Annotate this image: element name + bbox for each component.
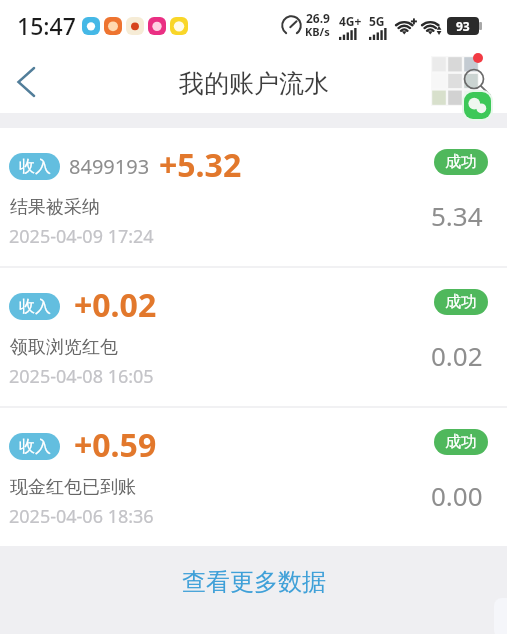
staticText: 2025-04-06 18:36 — [9, 504, 154, 529]
button[interactable]: Back — [2, 58, 50, 106]
staticText: +0.59 — [74, 423, 157, 467]
staticText: 成功 — [445, 292, 477, 312]
staticText: 查看更多数据 — [182, 567, 326, 597]
staticText: 现金红包已到账 — [10, 476, 136, 499]
staticText: 成功 — [445, 152, 477, 172]
staticText: 4G+ — [339, 13, 362, 29]
staticText: 15:47 — [17, 10, 76, 41]
staticText: 收入 — [19, 437, 51, 457]
button[interactable]: 收入 — [0, 268, 507, 406]
staticText: 93 — [456, 18, 470, 34]
staticText: 8499193 — [69, 153, 150, 180]
staticText: 收入 — [19, 297, 51, 317]
button[interactable]: 收入 — [0, 408, 507, 546]
staticText: 收入 — [19, 157, 51, 177]
staticText: 26.9 — [306, 10, 330, 26]
staticText: 领取浏览红包 — [10, 336, 118, 359]
staticText: 我的账户流水 — [179, 68, 329, 99]
staticText: 2025-04-09 17:24 — [9, 224, 154, 249]
staticText: 2025-04-08 16:05 — [9, 364, 154, 389]
staticText: 5G — [369, 13, 385, 29]
staticText: 成功 — [445, 432, 477, 452]
button[interactable]: 查看更多数据 — [0, 546, 507, 634]
staticText: KB/s — [305, 24, 330, 39]
staticText: 0.02 — [431, 338, 483, 373]
staticText: +0.02 — [74, 283, 157, 327]
staticText: +5.32 — [159, 143, 242, 187]
staticText: 0.00 — [431, 478, 483, 513]
staticText: 5.34 — [431, 198, 483, 233]
button[interactable]: 收入 — [0, 128, 507, 266]
button[interactable]: Screenshot tool — [425, 50, 497, 124]
staticText: 结果被采纳 — [10, 196, 100, 219]
